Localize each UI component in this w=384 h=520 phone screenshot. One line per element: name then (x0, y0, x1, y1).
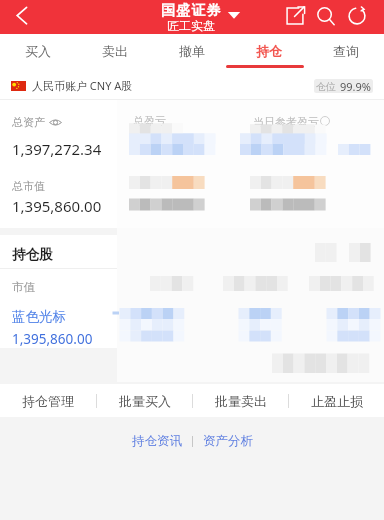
staticText: 匠工实盘 (167, 18, 215, 33)
staticText: 持仓管理 (22, 393, 74, 409)
staticText: 蓝色光标 (12, 308, 66, 325)
button[interactable]: Switch account (227, 8, 241, 22)
button[interactable]: 批量买入 (97, 384, 192, 417)
button[interactable]: Refresh (345, 4, 369, 28)
button[interactable]: 蓝色光标 (0, 308, 384, 348)
button[interactable]: 查询 (307, 34, 384, 68)
staticText: 买入 (25, 43, 51, 59)
button[interactable]: 买入 (0, 34, 76, 68)
staticText: 持仓股 (12, 246, 53, 263)
staticText: 1,395,860.00 (12, 330, 93, 348)
staticText: 查询 (333, 43, 359, 59)
button[interactable]: 持仓管理 (0, 384, 96, 417)
staticText: 持仓 (256, 43, 282, 59)
button[interactable]: 持仓 (230, 34, 307, 68)
button[interactable]: 持仓股 (0, 235, 384, 268)
staticText: 卖出 (102, 43, 128, 59)
staticText: 批量买入 (119, 393, 171, 409)
button[interactable]: 仓位 (314, 79, 373, 93)
staticText: 99.9% (340, 79, 371, 93)
button[interactable]: Back (0, 0, 34, 34)
staticText: 国盛证券 (161, 2, 222, 20)
staticText: 止盈止损 (311, 393, 363, 409)
button[interactable]: 止盈止损 (289, 384, 384, 417)
staticText: 当日参考盈亏 (253, 115, 319, 129)
staticText: 总盈亏 (133, 114, 166, 128)
staticText: 总资产 (12, 115, 45, 129)
button[interactable]: 持仓资讯 (122, 429, 192, 453)
button[interactable]: 人民币账户 CNY A股 (11, 78, 133, 93)
button[interactable]: Toggle balance visibility (49, 116, 62, 129)
button[interactable]: Search (314, 4, 338, 28)
button[interactable]: 批量卖出 (193, 384, 288, 417)
staticText: 1,397,272.34 (12, 139, 102, 159)
button[interactable]: Share (283, 4, 307, 28)
staticText: 人民币账户 CNY A股 (32, 78, 133, 93)
staticText: 总市值 (12, 179, 45, 193)
staticText: 持仓资讯 (132, 433, 182, 449)
button[interactable]: 撤单 (153, 34, 230, 68)
button[interactable]: 卖出 (76, 34, 153, 68)
staticText: 仓位 (316, 80, 336, 93)
staticText: 1,395,860.00 (12, 196, 102, 216)
staticText: 资产分析 (203, 433, 253, 449)
staticText: 批量卖出 (215, 393, 267, 409)
staticText: 市值 (12, 280, 35, 294)
button[interactable]: 资产分析 (193, 429, 263, 453)
staticText: 撤单 (179, 43, 205, 59)
